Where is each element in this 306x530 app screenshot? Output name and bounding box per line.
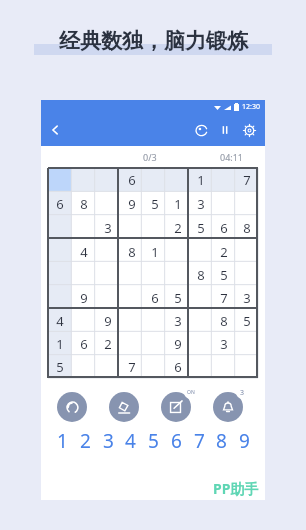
button[interactable]: 3 — [166, 309, 189, 332]
button[interactable]: 5 — [189, 216, 212, 240]
button[interactable]: 1 — [48, 332, 72, 355]
button[interactable] — [120, 332, 143, 355]
button[interactable]: 7 — [189, 428, 209, 454]
button[interactable] — [72, 263, 96, 286]
button[interactable]: 6 — [143, 286, 166, 309]
button[interactable] — [96, 192, 120, 216]
button[interactable]: 4 — [48, 309, 72, 332]
button[interactable]: Back — [41, 116, 69, 144]
button[interactable]: 6 — [166, 355, 189, 378]
button[interactable]: 8 — [72, 192, 96, 216]
button[interactable]: 4 — [72, 240, 96, 263]
button[interactable] — [189, 332, 212, 355]
button[interactable] — [143, 168, 166, 192]
button[interactable]: 3 — [212, 332, 235, 355]
button[interactable] — [235, 355, 258, 378]
button[interactable]: 9 — [120, 192, 143, 216]
button[interactable] — [96, 355, 120, 378]
button[interactable] — [48, 240, 72, 263]
button[interactable] — [189, 286, 212, 309]
button[interactable] — [48, 286, 72, 309]
button[interactable] — [72, 216, 96, 240]
button[interactable]: 7 — [235, 168, 258, 192]
button[interactable]: 1 — [52, 428, 72, 454]
button[interactable]: 5 — [166, 286, 189, 309]
button[interactable]: 9 — [96, 309, 120, 332]
button[interactable] — [96, 286, 120, 309]
button[interactable]: 1 — [166, 192, 189, 216]
button[interactable]: 6 — [72, 332, 96, 355]
button[interactable] — [235, 240, 258, 263]
button[interactable]: 6 — [212, 216, 235, 240]
button[interactable]: 8 — [120, 240, 143, 263]
button[interactable] — [143, 216, 166, 240]
button[interactable] — [166, 240, 189, 263]
button[interactable] — [48, 263, 72, 286]
button[interactable]: 3 — [96, 216, 120, 240]
button[interactable]: 9 — [72, 286, 96, 309]
button[interactable]: 9 — [166, 332, 189, 355]
button[interactable]: Erase — [109, 392, 139, 422]
button[interactable]: 8 — [189, 263, 212, 286]
button[interactable] — [72, 168, 96, 192]
button[interactable]: 1 — [189, 168, 212, 192]
button[interactable]: 6 — [48, 192, 72, 216]
button[interactable]: 8 — [212, 309, 235, 332]
button[interactable] — [166, 263, 189, 286]
button[interactable]: Theme — [189, 118, 213, 142]
button[interactable] — [120, 309, 143, 332]
button[interactable]: 6 — [166, 428, 186, 454]
button[interactable] — [96, 240, 120, 263]
button[interactable]: 3 — [235, 286, 258, 309]
button[interactable] — [212, 168, 235, 192]
button[interactable] — [235, 192, 258, 216]
button[interactable] — [166, 168, 189, 192]
button[interactable]: 2 — [212, 240, 235, 263]
button[interactable]: 2 — [96, 332, 120, 355]
button[interactable]: 2 — [75, 428, 95, 454]
button[interactable]: 5 — [48, 355, 72, 378]
button[interactable] — [143, 263, 166, 286]
button[interactable] — [212, 192, 235, 216]
button[interactable]: 1 — [143, 240, 166, 263]
button[interactable] — [72, 309, 96, 332]
button[interactable]: 7 — [120, 355, 143, 378]
button[interactable]: 5 — [143, 428, 163, 454]
button[interactable] — [235, 332, 258, 355]
button[interactable]: Settings — [237, 118, 261, 142]
button[interactable]: 3 — [98, 428, 118, 454]
button[interactable]: Notes — [161, 392, 191, 422]
staticText: 6 — [220, 219, 228, 237]
button[interactable] — [189, 355, 212, 378]
button[interactable] — [48, 216, 72, 240]
button[interactable] — [189, 240, 212, 263]
button[interactable] — [143, 355, 166, 378]
button[interactable]: 2 — [166, 216, 189, 240]
button[interactable] — [72, 355, 96, 378]
button[interactable] — [212, 355, 235, 378]
button[interactable] — [120, 263, 143, 286]
button[interactable]: 5 — [235, 309, 258, 332]
button[interactable]: 5 — [212, 263, 235, 286]
button[interactable] — [189, 309, 212, 332]
button[interactable]: 8 — [235, 216, 258, 240]
button[interactable]: 9 — [234, 428, 254, 454]
button[interactable] — [120, 286, 143, 309]
button[interactable] — [143, 332, 166, 355]
button[interactable]: 3 — [189, 192, 212, 216]
button[interactable] — [143, 309, 166, 332]
staticText: 5 — [148, 428, 159, 454]
button[interactable]: 6 — [120, 168, 143, 192]
button[interactable] — [96, 263, 120, 286]
button[interactable]: 7 — [212, 286, 235, 309]
button[interactable] — [96, 168, 120, 192]
button[interactable]: Undo — [57, 392, 87, 422]
button[interactable]: Hints — [213, 392, 243, 422]
button[interactable]: 8 — [211, 428, 231, 454]
button[interactable]: 5 — [143, 192, 166, 216]
button[interactable] — [120, 216, 143, 240]
button[interactable] — [235, 263, 258, 286]
button[interactable]: 4 — [120, 428, 140, 454]
button[interactable] — [48, 168, 72, 192]
button[interactable]: Pause — [213, 118, 237, 142]
